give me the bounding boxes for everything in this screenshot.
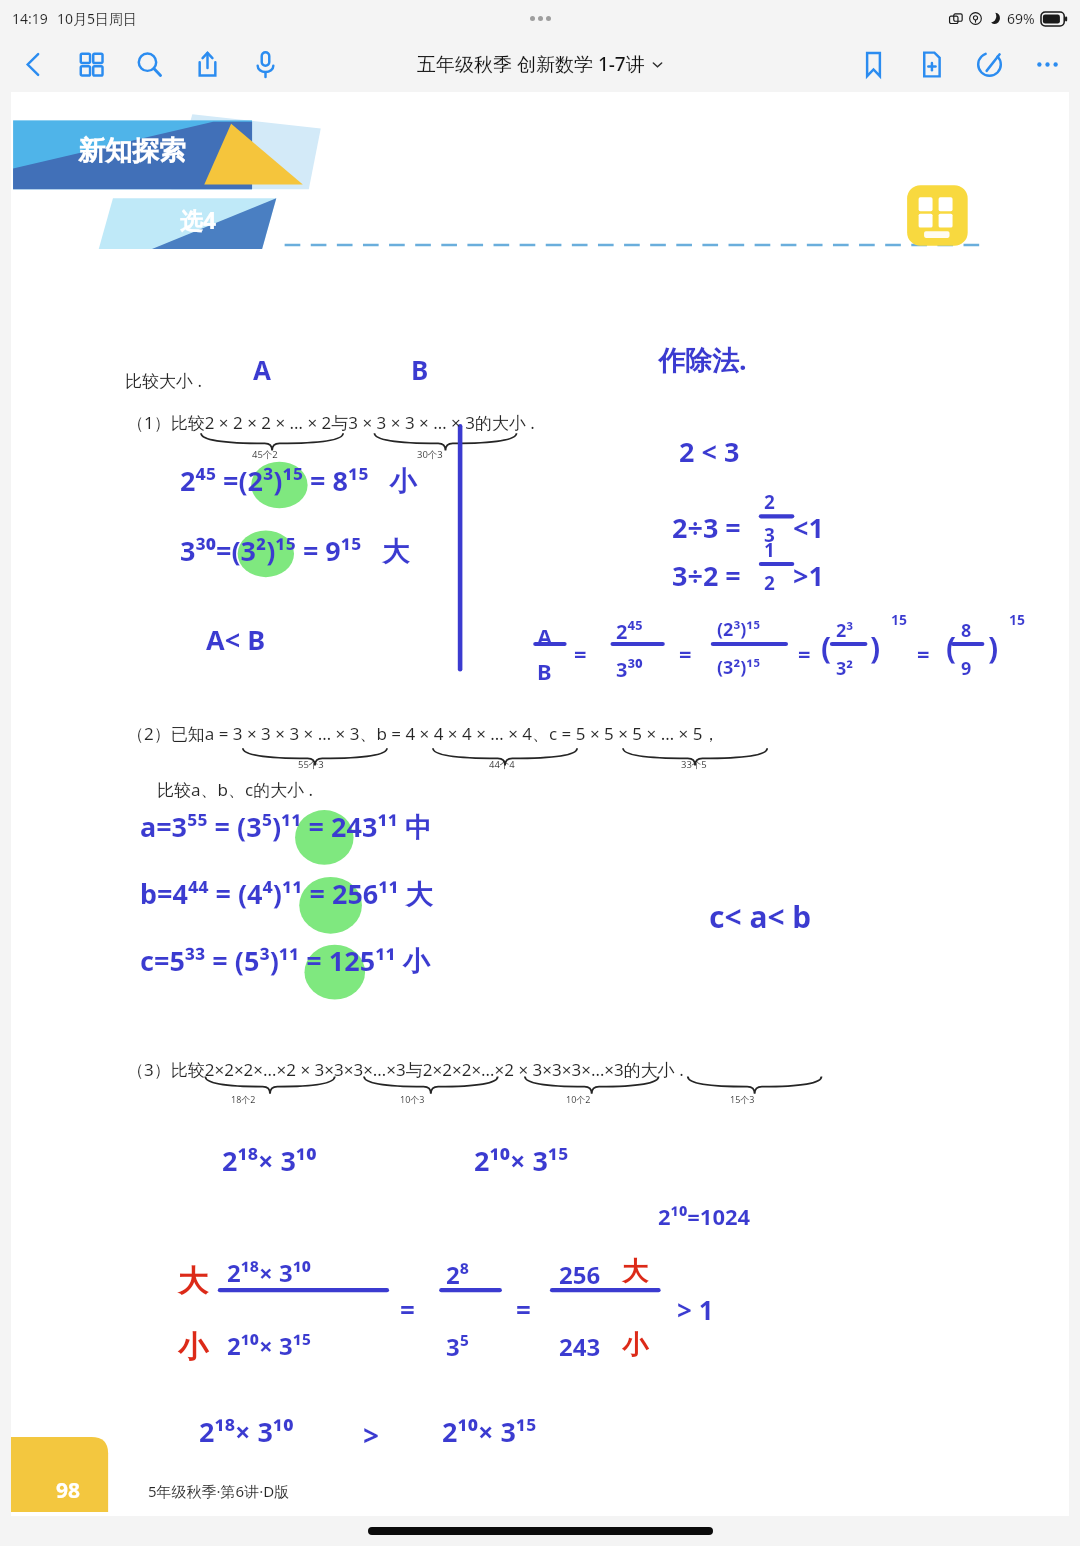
staticText: = [400, 1292, 415, 1327]
button[interactable]: Voice note [236, 36, 294, 92]
staticText: 2 [764, 489, 775, 515]
staticText: 2¹⁰× 3¹⁵ [474, 1142, 569, 1179]
staticText: 大 [622, 1255, 648, 1288]
staticText: 2¹⁰× 3¹⁵ [442, 1413, 537, 1450]
staticText: 15 [891, 610, 908, 629]
staticText: 3³⁰ [616, 656, 643, 683]
button[interactable]: Annotate [960, 36, 1018, 92]
staticText: 比较a、b、c的大小 . [157, 778, 314, 801]
staticText: 15 [1009, 610, 1026, 629]
staticText: A [537, 621, 553, 651]
staticText: 44个4 [489, 758, 515, 771]
staticText: ) [870, 627, 881, 668]
staticText: 2¹⁰× 3¹⁵ [227, 1329, 311, 1362]
staticText: （1）比较2 × 2 × 2 × … × 2与3 × 3 × 3 × … × 3… [127, 411, 535, 434]
staticText: b=4⁴⁴ = (4⁴)¹¹ = 256¹¹ 大 [140, 875, 433, 912]
staticText: 8 [961, 618, 972, 643]
staticText: 2¹⁸× 3¹⁰ [222, 1142, 317, 1179]
staticText: 5年级秋季·第6讲·D版 [148, 1481, 290, 1501]
button[interactable]: Search [120, 36, 178, 92]
staticText: 2 < 3 [679, 433, 740, 470]
staticText: <1 [793, 509, 824, 546]
staticText: 69% [1007, 9, 1035, 28]
staticText: 45个2 [252, 448, 278, 461]
staticText: 3 [764, 522, 775, 548]
staticText: > [363, 1416, 380, 1454]
staticText: c=5³³ = (5³)¹¹ = 125¹¹ 小 [140, 942, 430, 979]
staticText: 新知探索 [78, 134, 186, 168]
staticText: ( [821, 627, 832, 668]
staticText: 18个2 [231, 1093, 256, 1105]
button[interactable]: Share [178, 36, 236, 92]
button[interactable]: Back [4, 36, 62, 92]
staticText: >1 [793, 557, 824, 594]
staticText: 10个2 [566, 1093, 591, 1105]
staticText: a=3⁵⁵ = (3⁵)¹¹ = 243¹¹ 中 [140, 808, 432, 845]
staticText: 比较大小 . [125, 369, 202, 392]
staticText: (2³)¹⁵ [717, 617, 761, 642]
staticText: 10月5日周日 [57, 9, 138, 28]
staticText: 10个3 [400, 1093, 425, 1105]
staticText: 98 [56, 1476, 81, 1505]
staticText: > 1 [677, 1292, 714, 1327]
staticText: (3²)¹⁵ [717, 655, 761, 680]
staticText: = [574, 638, 587, 668]
staticText: 1 [764, 537, 775, 563]
staticText: 2¹⁸× 3¹⁰ [227, 1256, 311, 1289]
staticText: = [679, 638, 692, 668]
staticText: c< a< b [709, 896, 812, 937]
staticText: A< B [206, 621, 266, 658]
staticText: = [917, 638, 930, 668]
button[interactable]: Bookmark [844, 36, 902, 92]
staticText: 3³⁰=(3²)¹⁵ = 9¹⁵ 大 [180, 532, 410, 569]
staticText: 256 [559, 1258, 601, 1291]
staticText: A [253, 352, 271, 387]
staticText: 2⁴⁵ [616, 618, 643, 645]
staticText: 大 [178, 1262, 208, 1300]
staticText: 243 [559, 1330, 601, 1363]
staticText: 选4 [180, 204, 217, 235]
staticText: 14:19 [12, 9, 48, 28]
staticText: 作除法. [658, 341, 747, 378]
button[interactable]: 五年级秋季 创新数学 1-7讲 [411, 45, 669, 83]
staticText: 2¹⁸× 3¹⁰ [199, 1413, 294, 1450]
staticText: B [411, 352, 429, 387]
staticText: = [798, 638, 811, 668]
staticText: 55个3 [298, 758, 324, 771]
staticText: 3² [836, 656, 854, 681]
staticText: 2³ [836, 618, 854, 643]
staticText: 2÷3 = [672, 509, 741, 546]
staticText: 30个3 [417, 448, 443, 461]
staticText: （2）已知a = 3 × 3 × 3 × … × 3、b = 4 × 4 × 4… [127, 722, 720, 745]
staticText: 小 [622, 1329, 648, 1362]
staticText: 2⁸ [446, 1258, 469, 1291]
button[interactable]: Thumbnails [62, 36, 120, 92]
staticText: 33个5 [681, 758, 707, 771]
staticText: ( [946, 627, 957, 668]
staticText: 3÷2 = [672, 557, 741, 594]
button[interactable]: Add page [902, 36, 960, 92]
staticText: （3）比较2×2×2×…×2 × 3×3×3×…×3与2×2×2×…×2 × 3… [127, 1058, 684, 1081]
staticText: B [537, 656, 552, 686]
staticText: 2¹⁰=1024 [658, 1201, 751, 1231]
staticText: 五年级秋季 创新数学 1-7讲 [417, 51, 645, 77]
staticText: 3⁵ [446, 1330, 469, 1363]
staticText: ) [988, 627, 999, 668]
button[interactable]: More options [1018, 36, 1076, 92]
staticText: = [516, 1292, 531, 1327]
staticText: 小 [178, 1328, 208, 1366]
staticText: 15个3 [730, 1093, 755, 1105]
staticText: 9 [961, 656, 972, 681]
staticText: 2 [764, 570, 775, 596]
staticText: 2⁴⁵ =(2³)¹⁵ = 8¹⁵ 小 [180, 462, 417, 499]
